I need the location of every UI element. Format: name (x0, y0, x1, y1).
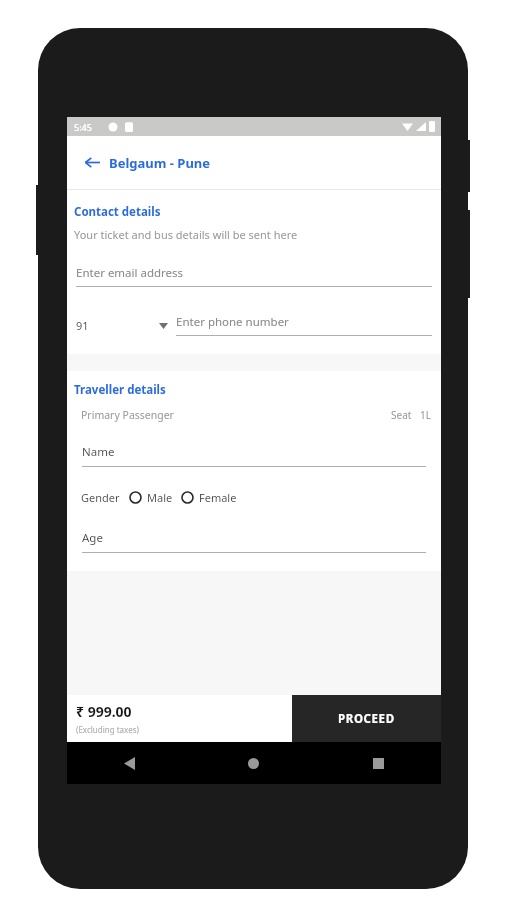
button[interactable]: Recent apps (316, 742, 441, 784)
staticText: Primary Passenger (81, 408, 174, 422)
staticText: 1L (420, 408, 431, 422)
button[interactable]: PROCEED (292, 695, 441, 742)
staticText: Contact details (74, 204, 161, 220)
staticText: Enter email address (76, 265, 184, 281)
staticText: Male (147, 490, 173, 505)
button[interactable]: Age (67, 530, 441, 553)
button[interactable]: Back (67, 742, 191, 784)
staticText: Female (199, 490, 237, 505)
staticText: (Excluding taxes) (76, 724, 139, 735)
button[interactable]: Back (67, 136, 441, 189)
other: Select country code (159, 323, 168, 329)
button[interactable]: Enter phone number (176, 314, 432, 336)
staticText: 91 (76, 318, 89, 333)
staticText: Belgaum - Pune (109, 154, 211, 172)
button[interactable]: Enter email address (67, 265, 441, 287)
staticText: 5:45 (74, 121, 92, 133)
button[interactable]: Name (67, 444, 441, 467)
staticText: Enter phone number (176, 314, 289, 330)
staticText: Gender (81, 490, 120, 505)
button[interactable]: Female (181, 490, 237, 505)
button[interactable]: Home (191, 742, 316, 784)
staticText: Seat (391, 408, 412, 422)
staticText: Your ticket and bus details will be sent… (74, 227, 298, 242)
other: Back (85, 156, 100, 169)
button[interactable]: 91 (76, 318, 176, 333)
staticText: Age (82, 530, 103, 546)
staticText: Name (82, 444, 115, 460)
staticText: ₹ 999.00 (76, 702, 132, 721)
staticText: PROCEED (338, 711, 395, 727)
button[interactable]: Male (129, 490, 173, 505)
staticText: Traveller details (74, 382, 166, 398)
